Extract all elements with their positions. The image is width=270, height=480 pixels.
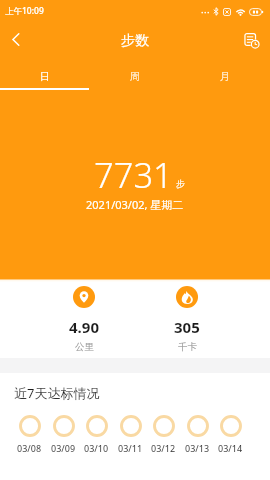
- staticText: 305: [174, 317, 200, 337]
- button[interactable]: 03/14: [218, 415, 243, 454]
- staticText: 公里: [75, 341, 94, 353]
- staticText: 03/14: [218, 442, 243, 454]
- staticText: 近7天达标情况: [14, 384, 100, 402]
- staticText: 03/10: [84, 442, 109, 454]
- button[interactable]: 03/12: [151, 415, 176, 454]
- button[interactable]: 日: [0, 60, 90, 92]
- staticText: 03/09: [51, 442, 76, 454]
- button[interactable]: Back: [0, 23, 32, 55]
- staticText: 03/08: [17, 442, 42, 454]
- button[interactable]: 03/09: [51, 415, 76, 454]
- staticText: 步: [176, 178, 185, 189]
- staticText: 周: [130, 70, 140, 83]
- staticText: 日: [40, 70, 50, 83]
- button[interactable]: 03/11: [118, 415, 143, 454]
- staticText: 7731: [94, 151, 173, 198]
- staticText: 03/12: [151, 442, 176, 454]
- staticText: 2021/03/02, 星期二: [86, 197, 184, 212]
- staticText: 03/11: [118, 442, 143, 454]
- button[interactable]: 月: [180, 60, 270, 92]
- button[interactable]: 03/10: [84, 415, 109, 454]
- staticText: 4.90: [69, 317, 99, 337]
- button[interactable]: 4.90: [39, 286, 129, 353]
- button[interactable]: 03/08: [17, 415, 42, 454]
- button[interactable]: 03/13: [185, 415, 210, 454]
- staticText: 03/13: [185, 442, 210, 454]
- button[interactable]: History: [236, 25, 268, 57]
- staticText: 上午10:09: [5, 5, 44, 17]
- button[interactable]: 305: [142, 286, 232, 353]
- staticText: 千卡: [178, 341, 197, 353]
- staticText: 月: [220, 70, 230, 83]
- staticText: 步数: [121, 32, 149, 50]
- button[interactable]: 周: [90, 60, 180, 92]
